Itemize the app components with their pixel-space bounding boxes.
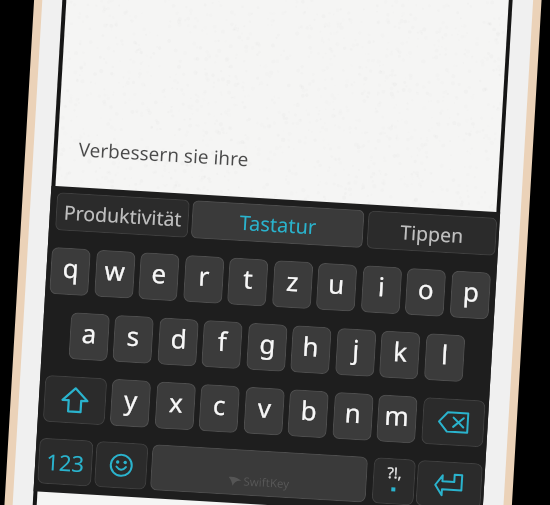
staticText: s bbox=[126, 317, 141, 353]
staticText: u bbox=[327, 265, 346, 301]
button[interactable]: d bbox=[157, 317, 199, 367]
button[interactable]: z bbox=[272, 260, 313, 309]
button[interactable]: w bbox=[94, 250, 136, 299]
staticText: Produktivität bbox=[63, 199, 183, 232]
button[interactable]: Enter bbox=[415, 460, 483, 505]
button[interactable]: p bbox=[449, 270, 491, 320]
button[interactable]: c bbox=[198, 384, 240, 433]
button[interactable]: Shift bbox=[43, 375, 107, 425]
staticText: c bbox=[212, 387, 227, 422]
button[interactable]: Produktivität bbox=[55, 192, 190, 238]
button[interactable]: v bbox=[243, 386, 285, 436]
button[interactable]: f bbox=[201, 320, 243, 369]
staticText: w bbox=[104, 252, 127, 288]
button[interactable]: x bbox=[154, 381, 196, 430]
button[interactable]: j bbox=[335, 328, 377, 377]
button[interactable]: q bbox=[49, 247, 91, 296]
button[interactable]: l bbox=[424, 333, 465, 382]
button[interactable]: e bbox=[138, 252, 180, 301]
staticText: j bbox=[351, 331, 360, 366]
staticText: 123 bbox=[45, 446, 85, 478]
staticText: h bbox=[302, 328, 321, 364]
button[interactable]: b bbox=[287, 389, 329, 438]
staticText: m bbox=[384, 397, 411, 433]
staticText: n bbox=[344, 394, 363, 430]
staticText: g bbox=[259, 325, 277, 361]
staticText: t bbox=[242, 260, 254, 296]
staticText: ?!, bbox=[387, 462, 403, 483]
staticText: y bbox=[123, 381, 139, 417]
staticText: SwiftKey bbox=[243, 474, 290, 492]
staticText: p bbox=[462, 273, 480, 309]
staticText: l bbox=[440, 336, 449, 371]
button[interactable]: n bbox=[332, 392, 374, 441]
staticText: Verbessern sie ihre bbox=[78, 136, 249, 172]
staticText: v bbox=[257, 389, 273, 425]
staticText: b bbox=[300, 392, 318, 428]
staticText: z bbox=[285, 263, 300, 298]
button[interactable]: s bbox=[112, 315, 154, 364]
button[interactable]: Backspace bbox=[421, 397, 486, 448]
button[interactable]: a bbox=[68, 312, 110, 361]
button[interactable]: t bbox=[227, 257, 269, 306]
staticText: q bbox=[62, 250, 80, 285]
button[interactable]: g bbox=[246, 323, 288, 372]
staticText: Tastatur bbox=[239, 209, 317, 240]
button[interactable]: r bbox=[183, 255, 225, 304]
staticText: Tippen bbox=[400, 218, 464, 249]
button[interactable]: 123 bbox=[37, 437, 94, 487]
button[interactable]: Emoji bbox=[94, 441, 149, 490]
staticText: a bbox=[81, 315, 98, 351]
button[interactable]: Space bbox=[150, 444, 368, 503]
staticText: r bbox=[197, 258, 210, 293]
button[interactable]: ?!, bbox=[371, 457, 416, 505]
button[interactable]: u bbox=[316, 263, 357, 312]
staticText: x bbox=[168, 384, 184, 420]
staticText: o bbox=[417, 270, 435, 306]
button[interactable]: Tippen bbox=[366, 210, 497, 256]
staticText: e bbox=[151, 255, 168, 291]
staticText: d bbox=[170, 320, 188, 356]
button[interactable]: Tastatur bbox=[191, 200, 365, 248]
staticText: f bbox=[217, 323, 228, 358]
staticText: i bbox=[377, 268, 386, 303]
button[interactable]: o bbox=[405, 268, 446, 317]
button[interactable]: y bbox=[110, 379, 151, 428]
button[interactable]: i bbox=[361, 265, 402, 314]
button[interactable]: k bbox=[379, 330, 421, 380]
staticText: k bbox=[392, 333, 408, 369]
button[interactable]: h bbox=[290, 325, 332, 374]
button[interactable]: m bbox=[376, 394, 418, 443]
